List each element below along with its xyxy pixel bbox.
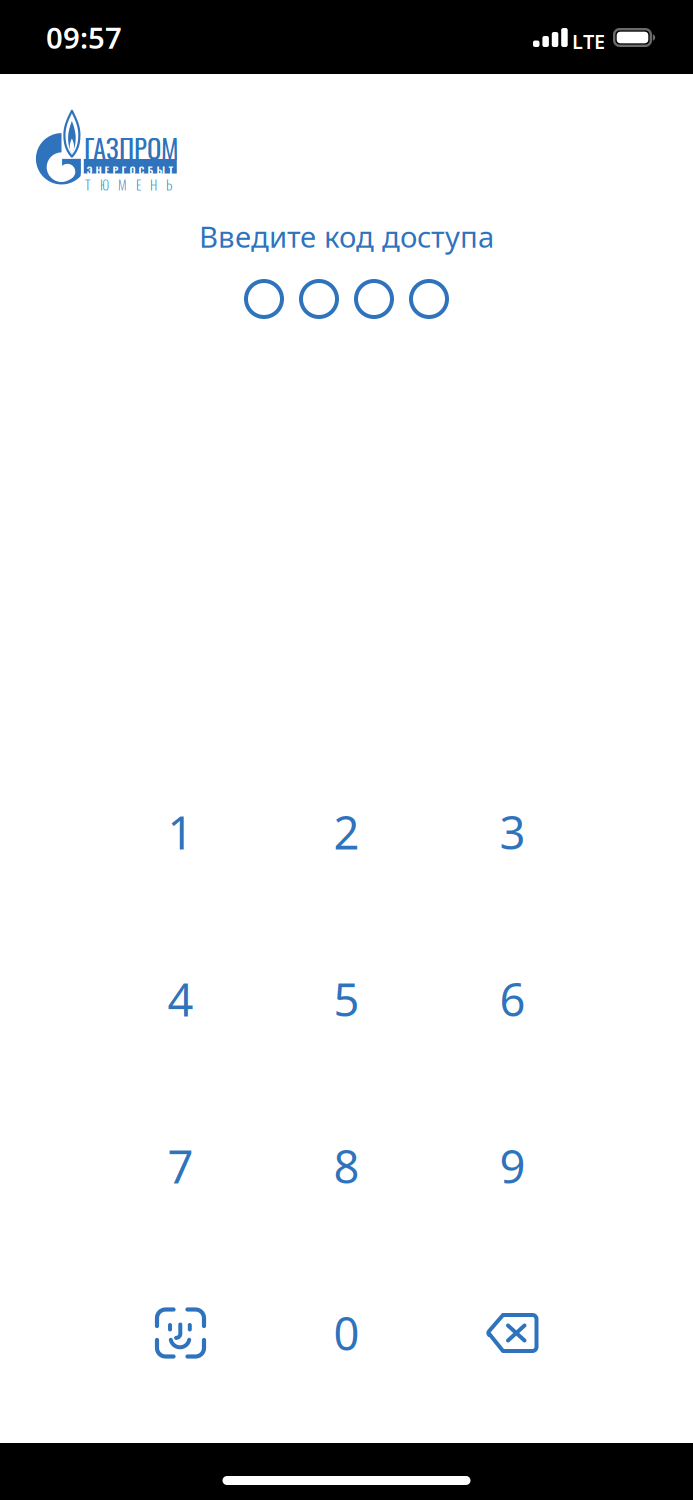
staticText: Т Ю М Е Н Ь: [85, 175, 172, 194]
staticText: 7: [167, 1136, 193, 1196]
button[interactable]: 0: [263, 1273, 429, 1393]
staticText: Введите код доступа: [199, 217, 494, 256]
button[interactable]: Delete: [429, 1273, 595, 1393]
staticText: 8: [333, 1136, 359, 1196]
button[interactable]: 1: [97, 772, 263, 892]
button[interactable]: 7: [97, 1106, 263, 1226]
button[interactable]: 8: [263, 1106, 429, 1226]
staticText: 3: [499, 802, 525, 862]
staticText: ГАЗПРОМ: [84, 128, 179, 167]
staticText: 5: [333, 969, 359, 1029]
staticText: 0: [333, 1303, 359, 1363]
button[interactable]: Face ID: [97, 1273, 263, 1393]
button[interactable]: 4: [97, 939, 263, 1059]
staticText: 9: [499, 1136, 525, 1196]
button[interactable]: 2: [263, 772, 429, 892]
button[interactable]: 5: [263, 939, 429, 1059]
staticText: 2: [333, 802, 359, 862]
staticText: LTE: [572, 28, 605, 55]
button[interactable]: 6: [429, 939, 595, 1059]
staticText: 1: [167, 802, 193, 862]
staticText: Э Н Е Р Г О С Б Ы Т: [86, 162, 173, 178]
staticText: 4: [167, 969, 193, 1029]
button[interactable]: 3: [429, 772, 595, 892]
staticText: 6: [499, 969, 525, 1029]
button[interactable]: 9: [429, 1106, 595, 1226]
staticText: 09:57: [46, 18, 122, 57]
